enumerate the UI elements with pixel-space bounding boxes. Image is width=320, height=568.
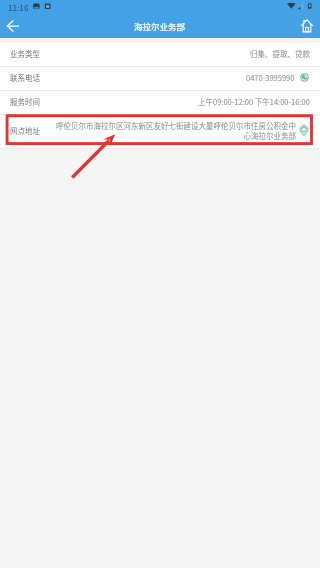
staticText: 归集、提取、贷款 xyxy=(250,48,310,59)
staticText: 上午09:00-12:00 下午14:00-16:00 xyxy=(198,96,310,107)
staticText: 呼伦贝尔市海拉尔区河东新区友好七街建设大厦呼伦贝尔市住房公积金中心海拉尔业务部 xyxy=(54,120,296,142)
button[interactable]: 网点地址 xyxy=(0,115,320,149)
staticText: 联系电话 xyxy=(10,72,40,83)
button[interactable]: Home xyxy=(296,14,320,38)
staticText: 网点地址 xyxy=(10,125,40,136)
staticText: 业务类型 xyxy=(10,48,40,59)
button[interactable]: 服务时间 xyxy=(0,91,320,115)
button[interactable]: 联系电话 xyxy=(0,67,320,91)
button[interactable]: Back xyxy=(0,14,26,38)
button[interactable]: 业务类型 xyxy=(0,43,320,67)
staticText: 海拉尔业务部 xyxy=(134,20,186,32)
staticText: 11:16 xyxy=(8,1,29,13)
staticText: 0470-3995990 xyxy=(246,72,295,83)
staticText: 服务时间 xyxy=(10,96,40,107)
